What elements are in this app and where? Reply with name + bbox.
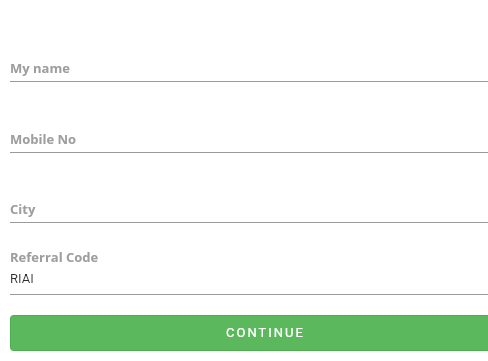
button[interactable]: Referral Code xyxy=(0,235,488,295)
staticText: CONTINUE xyxy=(226,325,305,340)
button[interactable]: My name xyxy=(0,46,488,82)
button[interactable]: CONTINUE xyxy=(11,316,488,350)
staticText: My name xyxy=(10,59,70,77)
button[interactable]: City xyxy=(0,187,488,223)
button[interactable]: Mobile No xyxy=(0,117,488,153)
staticText: Mobile No xyxy=(10,130,77,148)
staticText: Referral Code xyxy=(10,248,99,266)
staticText: RIAI xyxy=(10,271,34,286)
staticText: City xyxy=(10,200,36,218)
